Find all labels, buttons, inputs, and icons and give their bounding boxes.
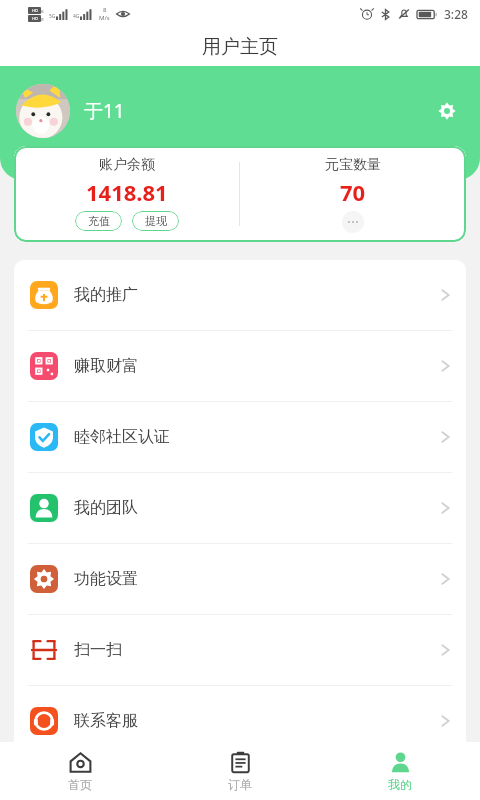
staticText: 我的: [388, 777, 412, 792]
staticText: 充值: [88, 214, 110, 228]
button[interactable]: 提现: [132, 211, 179, 231]
button[interactable]: 更多: [342, 211, 364, 233]
staticText: HD: [32, 8, 38, 13]
button[interactable]: 联系客服: [14, 686, 466, 756]
button[interactable]: 我的推广: [14, 260, 466, 330]
button[interactable]: 我的: [320, 742, 480, 800]
staticText: 我的团队: [74, 498, 138, 518]
button[interactable]: 我的团队: [14, 473, 466, 543]
staticText: 订单: [228, 777, 252, 792]
staticText: 5G: [49, 13, 56, 20]
staticText: B: [41, 17, 44, 22]
staticText: 联系客服: [74, 711, 138, 731]
staticText: 4G: [73, 13, 80, 20]
staticText: 用户主页: [202, 35, 278, 59]
staticText: 账户余额: [99, 156, 155, 174]
staticText: 扫一扫: [74, 640, 122, 660]
staticText: 赚取财富: [74, 356, 138, 376]
staticText: B: [41, 9, 44, 14]
staticText: 提现: [145, 214, 167, 228]
staticText: 8: [103, 6, 107, 14]
button[interactable]: 功能设置: [14, 544, 466, 614]
staticText: 睦邻社区认证: [74, 427, 170, 447]
button[interactable]: 头像: [16, 84, 70, 138]
button[interactable]: 订单: [160, 742, 320, 800]
button[interactable]: 首页: [0, 742, 160, 800]
button[interactable]: 扫一扫: [14, 615, 466, 685]
staticText: 首页: [68, 777, 92, 792]
staticText: M/s: [99, 14, 110, 22]
staticText: 我的推广: [74, 285, 138, 305]
staticText: 1418.81: [86, 177, 168, 207]
button[interactable]: 设置: [430, 94, 464, 128]
button[interactable]: 赚取财富: [14, 331, 466, 401]
staticText: 70: [340, 177, 366, 207]
staticText: 于11: [84, 98, 125, 124]
staticText: 功能设置: [74, 569, 138, 589]
button[interactable]: 睦邻社区认证: [14, 402, 466, 472]
button[interactable]: 充值: [75, 211, 122, 231]
staticText: 3:28: [444, 6, 468, 22]
staticText: HD: [32, 16, 38, 21]
staticText: 元宝数量: [325, 156, 381, 174]
